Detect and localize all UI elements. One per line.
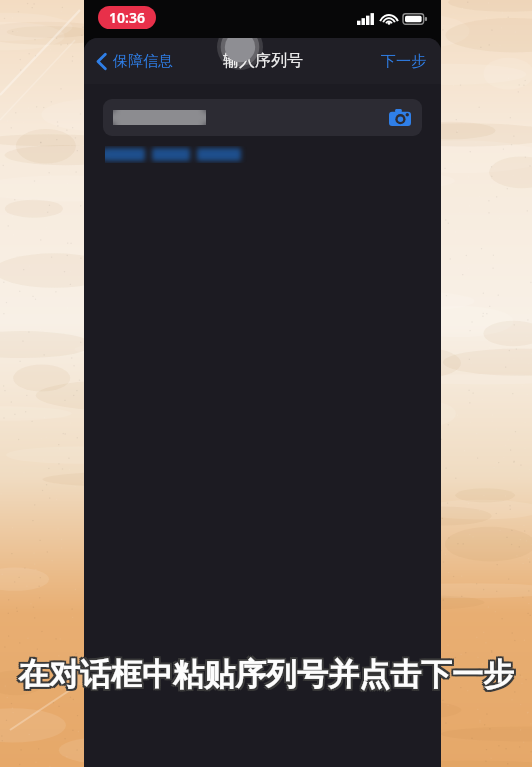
button[interactable]: 下一步 [376,48,431,75]
staticText: 在对话框中粘贴序列号并点击下一步 [20,655,516,694]
staticText: 在对话框中粘贴序列号并点击下一步 [18,655,514,694]
staticText: 在对话框中粘贴序列号并点击下一步 [20,653,516,692]
staticText: 在对话框中粘贴序列号并点击下一步 [18,657,514,696]
staticText: 在对话框中粘贴序列号并点击下一步 [20,657,516,696]
staticText: 保障信息 [113,52,173,71]
staticText: 在对话框中粘贴序列号并点击下一步 [18,653,514,692]
button[interactable]: 如何查找序列号 [105,146,247,163]
staticText: 在对话框中粘贴序列号并点击下一步 [16,655,512,694]
staticText: 在对话框中粘贴序列号并点击下一步 [16,657,512,696]
staticText: 下一步 [381,52,426,71]
staticText: 10:36 [109,8,145,27]
button[interactable]: 扫描序列号 [389,109,411,126]
button[interactable]: 扫描序列号 [103,99,422,136]
staticText: 输入序列号 [223,51,303,71]
staticText: 在对话框中粘贴序列号并点击下一步 [16,653,512,692]
button[interactable]: 保障信息 [92,48,177,75]
